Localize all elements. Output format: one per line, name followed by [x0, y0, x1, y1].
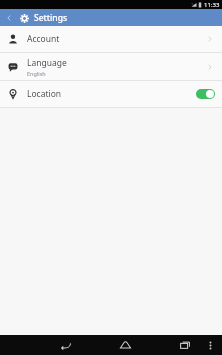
staticText: Settings — [34, 12, 68, 24]
button[interactable]: Account — [0, 26, 222, 52]
button[interactable]: Back — [52, 335, 78, 355]
staticText: English — [27, 70, 46, 77]
other: Open — [203, 60, 217, 74]
staticText: Location — [27, 88, 62, 100]
staticText: 11:33 — [204, 1, 220, 9]
button[interactable]: Language — [0, 53, 222, 80]
staticText: Account — [27, 33, 60, 45]
other: Open — [203, 32, 217, 46]
button[interactable]: Location toggle, on — [193, 87, 217, 101]
staticText: Language — [27, 57, 67, 69]
button[interactable]: Navigate up — [0, 9, 17, 26]
button[interactable]: More options — [201, 335, 219, 355]
button[interactable]: Home — [112, 335, 138, 355]
button[interactable]: Location — [0, 81, 222, 107]
button[interactable]: Recent apps — [172, 335, 198, 355]
